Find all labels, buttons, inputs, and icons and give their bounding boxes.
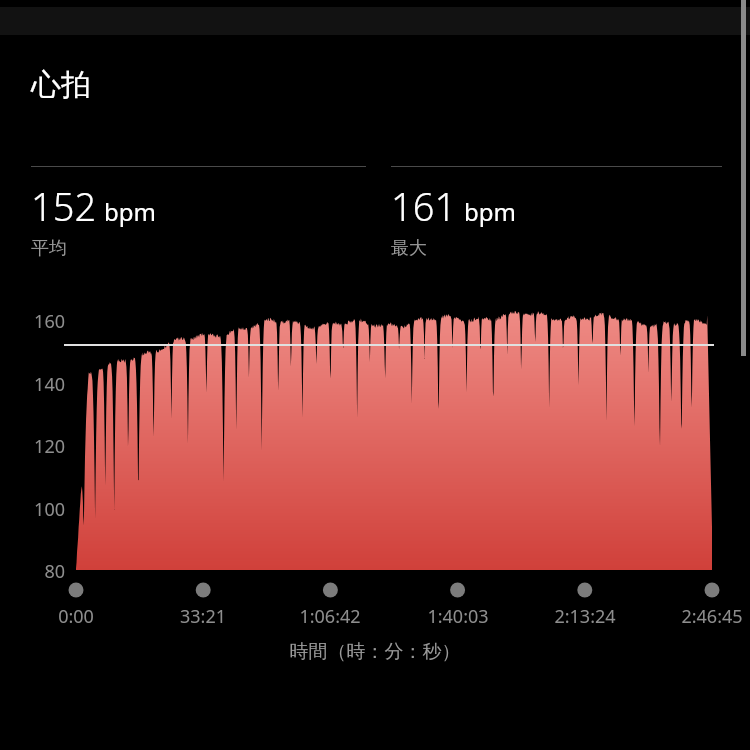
staticText: bpm (104, 195, 156, 228)
staticText: 80 (0, 559, 65, 584)
staticText: 100 (0, 497, 65, 522)
other: Heart rate chart (0, 0, 750, 750)
staticText: 1:06:42 (270, 604, 390, 629)
staticText: 時間（時：分：秒） (0, 640, 750, 664)
staticText: 平均 (31, 237, 67, 260)
staticText: 160 (0, 309, 65, 334)
button[interactable]: 心拍 (31, 66, 91, 104)
staticText: 161 (391, 180, 457, 232)
staticText: 最大 (391, 237, 427, 260)
staticText: 1:40:03 (398, 604, 518, 629)
staticText: 0:00 (16, 604, 136, 629)
staticText: 2:13:24 (525, 604, 645, 629)
button[interactable]: 152 (31, 166, 366, 260)
staticText: 33:21 (143, 604, 263, 629)
staticText: 心拍 (31, 66, 91, 104)
staticText: 152 (31, 180, 97, 232)
staticText: 140 (0, 372, 65, 397)
staticText: bpm (464, 195, 516, 228)
staticText: 120 (0, 434, 65, 459)
staticText: 2:46:45 (652, 604, 750, 629)
button[interactable]: 161 (391, 166, 722, 260)
